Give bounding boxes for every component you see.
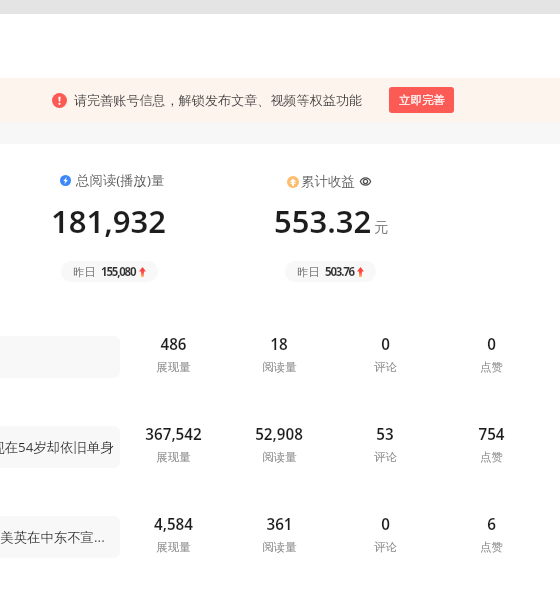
staticText: 0 <box>381 514 390 535</box>
staticText: 754 <box>478 424 505 445</box>
button[interactable]: 昨日 <box>285 261 376 282</box>
staticText: 53 <box>376 424 394 445</box>
staticText: 昨日 <box>73 265 96 279</box>
staticText: 展现量 <box>156 540 191 554</box>
staticText: 点赞 <box>480 360 503 374</box>
staticText: 0 <box>381 334 390 355</box>
staticText: 累计收益 <box>301 173 355 190</box>
staticText: 昨日 <box>297 265 320 279</box>
staticText: 美英在中东不宣... <box>0 528 105 546</box>
staticText: 展现量 <box>156 360 191 374</box>
button[interactable]: 486 <box>0 313 560 403</box>
staticText: 总阅读(播放)量 <box>76 171 165 189</box>
staticText: 6 <box>487 514 496 535</box>
staticText: 评论 <box>374 360 397 374</box>
staticText: 18 <box>270 334 288 355</box>
staticText: 展现量 <box>156 450 191 464</box>
staticText: 阅读量 <box>262 450 297 464</box>
staticText: 155,080 <box>101 264 136 280</box>
button[interactable]: 现在54岁却依旧单身 <box>0 403 560 493</box>
staticText: 评论 <box>374 540 397 554</box>
button[interactable]: 请完善账号信息，解锁发布文章、视频等权益功能 <box>0 78 560 122</box>
button[interactable]: Total reads <box>40 160 260 295</box>
staticText: 阅读量 <box>262 540 297 554</box>
staticText: 553.32 <box>274 200 372 242</box>
staticText: 请完善账号信息，解锁发布文章、视频等权益功能 <box>74 92 363 109</box>
button[interactable]: 立即完善 <box>389 87 454 113</box>
staticText: 361 <box>266 514 293 535</box>
staticText: 0 <box>487 334 496 355</box>
button[interactable]: Total earnings <box>265 160 485 295</box>
button[interactable]: 美英在中东不宣... <box>0 493 560 583</box>
button[interactable]: Show earnings detail <box>360 176 371 187</box>
staticText: 立即完善 <box>399 93 445 107</box>
staticText: 点赞 <box>480 450 503 464</box>
staticText: 181,932 <box>51 200 167 242</box>
staticText: 4,584 <box>154 514 193 535</box>
staticText: 阅读量 <box>262 360 297 374</box>
staticText: 点赞 <box>480 540 503 554</box>
staticText: 现在54岁却依旧单身 <box>0 438 114 456</box>
staticText: 元 <box>374 218 389 236</box>
staticText: 评论 <box>374 450 397 464</box>
staticText: 486 <box>160 334 187 355</box>
staticText: 503.76 <box>325 264 354 280</box>
staticText: 52,908 <box>255 424 303 445</box>
button[interactable]: 昨日 <box>61 261 158 282</box>
staticText: 367,542 <box>145 424 202 445</box>
